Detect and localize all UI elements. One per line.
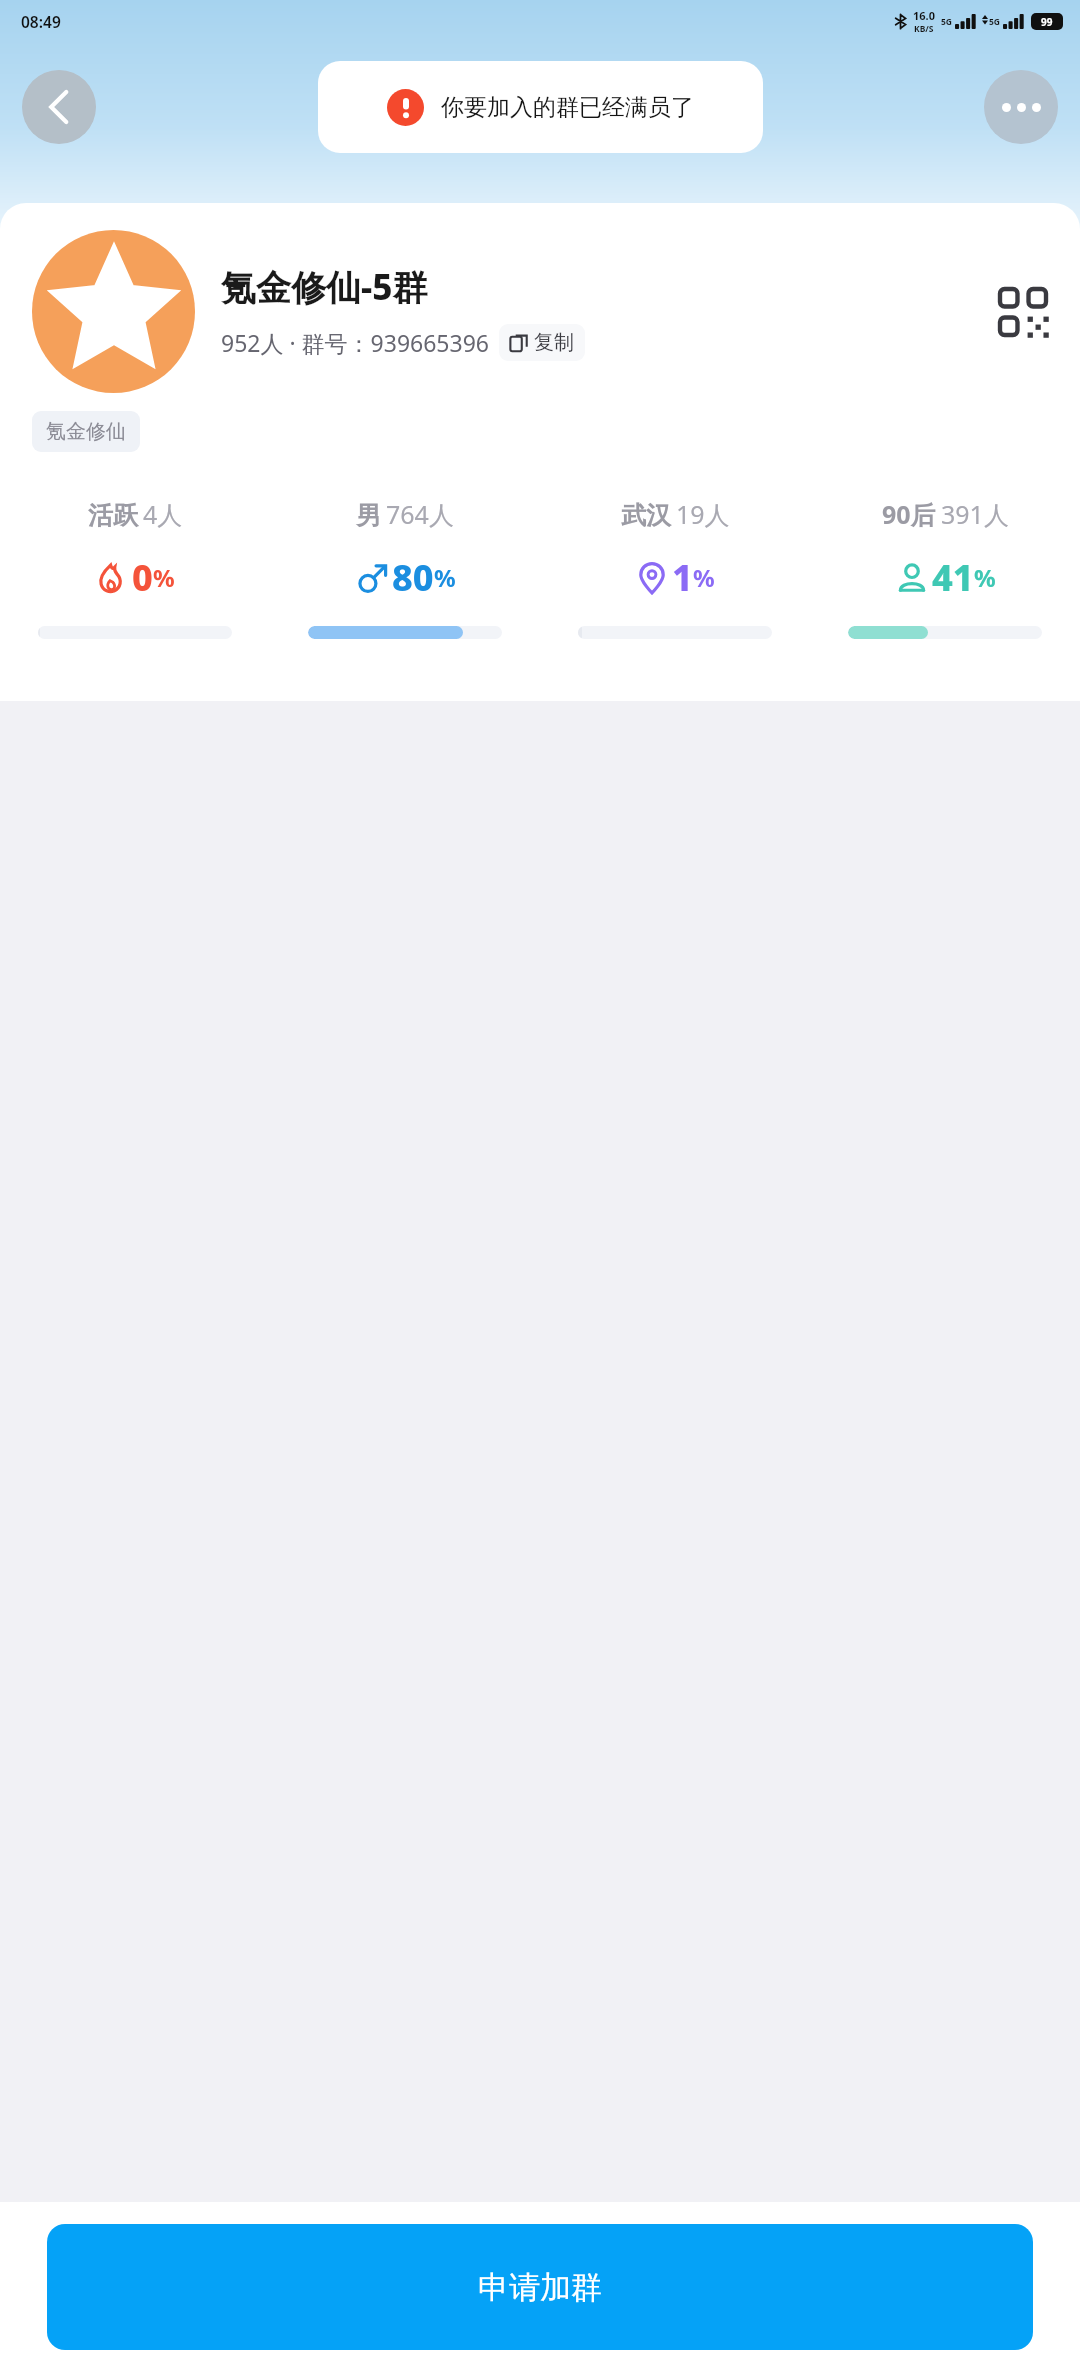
staticText: 氪金修仙-5群 (221, 263, 428, 311)
button[interactable]: 氪金修仙 (46, 419, 126, 444)
staticText: 0 (132, 553, 153, 602)
staticText: 活跃 (88, 500, 138, 531)
staticText: 391人 (941, 497, 1009, 531)
button[interactable]: 武汉 (540, 497, 810, 639)
button[interactable]: Group QR code (994, 283, 1052, 341)
staticText: 复制 (534, 330, 574, 355)
staticText: 5G (989, 16, 1001, 28)
staticText: 99 (1041, 15, 1053, 29)
staticText: 你要加入的群已经满员了 (441, 93, 694, 122)
button[interactable]: Back (22, 70, 96, 144)
staticText: 4人 (143, 497, 183, 531)
button[interactable]: More options (984, 70, 1058, 144)
staticText: 19人 (676, 497, 730, 531)
button[interactable]: 活跃 (0, 497, 270, 639)
staticText: 764人 (386, 497, 454, 531)
button[interactable] (32, 230, 195, 393)
staticText: 80 (392, 553, 434, 602)
staticText: 16.0 (913, 8, 935, 23)
staticText: 武汉 (621, 500, 671, 531)
button[interactable]: 复制 (510, 330, 574, 355)
staticText: % (434, 561, 456, 594)
staticText: 41 (932, 553, 974, 602)
staticText: 952人 · 群号：939665396 (221, 327, 489, 358)
button[interactable]: 男 (270, 497, 540, 639)
staticText: 男 (356, 500, 381, 531)
button[interactable]: 申请加群 (47, 2224, 1033, 2350)
button[interactable]: 90后 (810, 497, 1080, 639)
staticText: 申请加群 (478, 2268, 602, 2307)
staticText: 08:49 (21, 11, 61, 32)
staticText: 90后 (882, 497, 936, 531)
staticText: % (974, 561, 996, 594)
staticText: % (693, 561, 715, 594)
staticText: 1 (672, 553, 693, 602)
staticText: % (153, 561, 175, 594)
staticText: 5G (941, 16, 953, 28)
staticText: 氪金修仙 (46, 419, 126, 444)
staticText: KB/S (914, 23, 934, 35)
